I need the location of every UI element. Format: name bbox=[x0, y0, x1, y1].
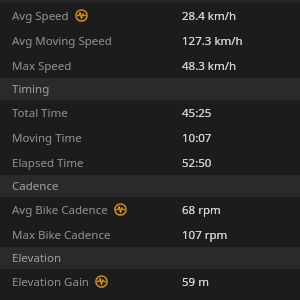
button[interactable]: Avg Bike Cadence bbox=[0, 197, 300, 222]
button[interactable]: Max Bike Cadence bbox=[0, 222, 300, 247]
staticText: 59 m bbox=[182, 274, 209, 290]
staticText: Elevation bbox=[12, 250, 62, 266]
button[interactable]: Total Time bbox=[0, 100, 300, 125]
staticText: 127.3 km/h bbox=[182, 33, 243, 49]
other: Sensor data bbox=[95, 275, 108, 288]
staticText: Max Speed bbox=[12, 58, 72, 74]
staticText: Cadence bbox=[12, 178, 59, 194]
staticText: Avg Moving Speed bbox=[12, 33, 112, 49]
button[interactable]: Avg Moving Speed bbox=[0, 28, 300, 53]
staticText: 45:25 bbox=[182, 105, 212, 121]
staticText: 10:07 bbox=[182, 130, 212, 146]
staticText: Max Bike Cadence bbox=[12, 227, 111, 243]
button[interactable]: Elevation Gain bbox=[0, 269, 300, 294]
staticText: 107 rpm bbox=[182, 227, 228, 243]
staticText: Moving Time bbox=[12, 130, 82, 146]
staticText: 28.4 km/h bbox=[182, 8, 237, 24]
staticText: Timing bbox=[12, 81, 50, 97]
staticText: 68 rpm bbox=[182, 202, 221, 218]
staticText: 52:50 bbox=[182, 155, 212, 171]
other: Sensor data bbox=[114, 203, 127, 216]
button[interactable]: Elapsed Time bbox=[0, 150, 300, 175]
staticText: Elevation Gain bbox=[12, 274, 89, 290]
button[interactable]: Max Speed bbox=[0, 53, 300, 78]
staticText: Total Time bbox=[12, 105, 68, 121]
button[interactable]: Avg Speed bbox=[0, 3, 300, 28]
staticText: Avg Bike Cadence bbox=[12, 202, 108, 218]
button[interactable]: Moving Time bbox=[0, 125, 300, 150]
staticText: Avg Speed bbox=[12, 8, 69, 24]
staticText: Elapsed Time bbox=[12, 155, 84, 171]
other: Sensor data bbox=[75, 9, 88, 22]
staticText: 48.3 km/h bbox=[182, 58, 237, 74]
